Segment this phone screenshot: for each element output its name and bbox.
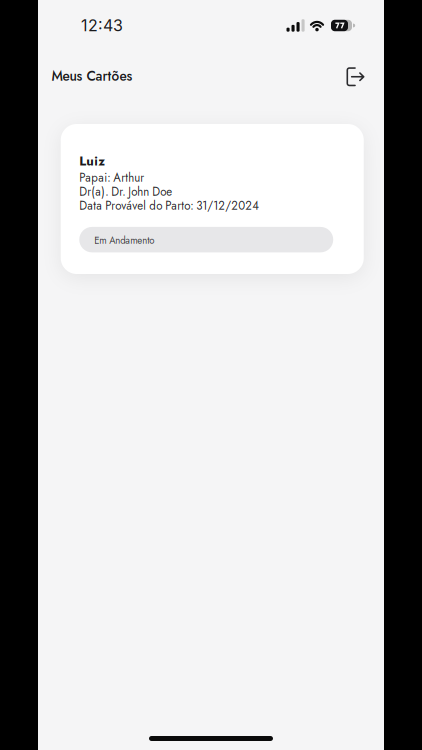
staticText: Em Andamento [94,233,154,247]
button[interactable]: Sair [346,67,364,86]
staticText: Luiz [79,151,105,170]
staticText: Dr(a). Dr. John Doe [79,183,172,200]
staticText: Meus Cartões [51,66,132,86]
staticText: 12:43 [81,16,123,35]
staticText: Papai: Arthur [79,169,144,186]
button[interactable]: Luiz [58,124,364,274]
staticText: Data Provável do Parto: 31/12/2024 [79,197,259,214]
